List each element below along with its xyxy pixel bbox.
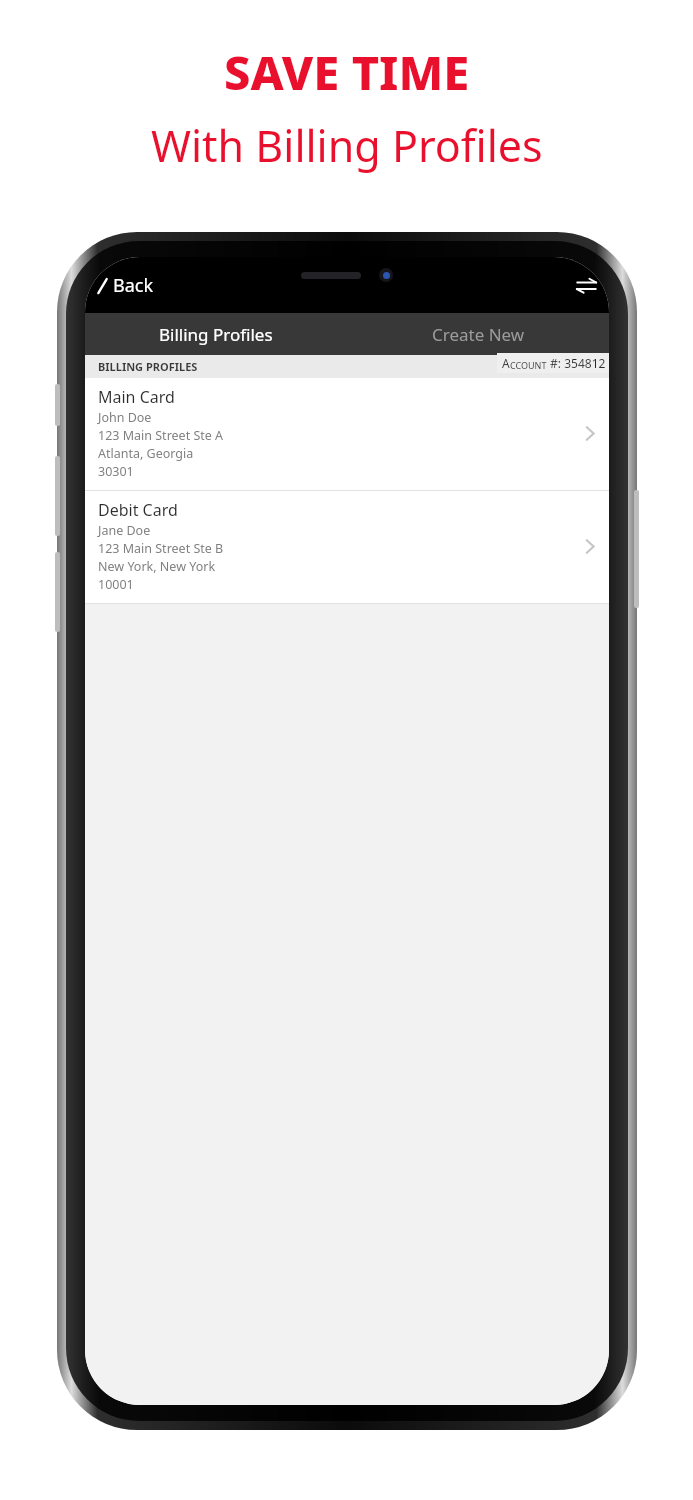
staticText: New York, New York xyxy=(98,558,216,575)
staticText: Create New xyxy=(432,323,525,346)
button[interactable]: Main Card xyxy=(85,378,609,490)
staticText: #: 354812 xyxy=(547,355,606,371)
button[interactable]: Billing Profiles xyxy=(85,313,347,355)
staticText: Debit Card xyxy=(98,499,178,521)
staticText: CCOUNT xyxy=(510,359,547,371)
staticText: Main Card xyxy=(98,386,175,408)
button[interactable]: Debit Card xyxy=(85,491,609,603)
staticText: 123 Main Street Ste B xyxy=(98,540,224,557)
button[interactable]: Create New xyxy=(347,313,609,355)
staticText: John Doe xyxy=(98,409,152,426)
staticText: With Billing Profiles xyxy=(151,116,543,175)
staticText: Jane Doe xyxy=(98,522,151,539)
staticText: 30301 xyxy=(98,463,134,480)
staticText: A xyxy=(502,355,510,371)
staticText: 123 Main Street Ste A xyxy=(98,427,224,444)
button[interactable]: Back xyxy=(85,265,170,306)
button[interactable]: Switch account xyxy=(564,269,609,302)
staticText: SAVE TIME xyxy=(224,40,470,104)
staticText: BILLING PROFILES xyxy=(98,359,198,374)
staticText: Back xyxy=(113,273,154,298)
staticText: Billing Profiles xyxy=(159,323,273,346)
staticText: Atlanta, Georgia xyxy=(98,445,194,462)
staticText: 10001 xyxy=(98,576,134,593)
